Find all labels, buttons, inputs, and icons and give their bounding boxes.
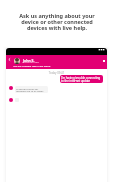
button[interactable]: Hi there! Thanks for reaching out to us … bbox=[15, 86, 48, 93]
staticText: Customer care bbox=[23, 61, 39, 64]
button[interactable]: Back bbox=[7, 57, 11, 61]
staticText: Ask us anything about your device or oth… bbox=[15, 12, 99, 31]
staticText: I'm having trouble connecting to the int… bbox=[61, 76, 102, 83]
staticText: Today 09:41 bbox=[6, 71, 107, 75]
staticText: John S. bbox=[23, 58, 35, 63]
staticText: You are chatting with a live agent bbox=[13, 64, 51, 67]
button[interactable]: I'm having trouble connecting to the int… bbox=[60, 75, 103, 83]
staticText: Hi there! Thanks for reaching out to us … bbox=[16, 87, 47, 93]
button[interactable]: More options bbox=[101, 58, 106, 63]
